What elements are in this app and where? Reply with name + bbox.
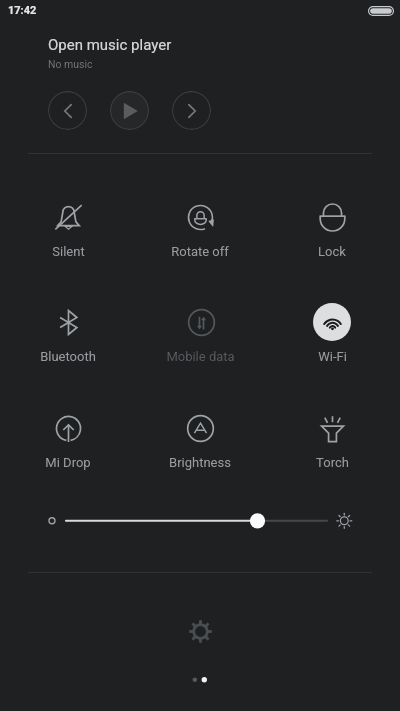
- button[interactable]: Brightness: [156, 409, 244, 481]
- staticText: Lock: [318, 244, 346, 259]
- button[interactable]: Silent: [24, 198, 112, 270]
- button[interactable]: Settings: [178, 609, 222, 653]
- staticText: Bluetooth: [40, 349, 96, 364]
- button[interactable]: Open music player: [0, 34, 400, 74]
- staticText: Rotate off: [171, 244, 229, 259]
- button[interactable]: Mobile data: [156, 303, 244, 375]
- button[interactable]: Mi Drop: [24, 409, 112, 481]
- staticText: 17:42: [8, 4, 37, 17]
- staticText: Mobile data: [166, 349, 235, 364]
- other: Next track: [182, 101, 202, 121]
- other: Play: [120, 101, 140, 121]
- staticText: Open music player: [48, 36, 172, 54]
- staticText: Mi Drop: [45, 455, 91, 470]
- button[interactable]: Rotate off: [156, 198, 244, 270]
- button[interactable]: Next track: [172, 91, 211, 130]
- other: Previous track: [58, 101, 78, 121]
- button[interactable]: Bluetooth: [24, 303, 112, 375]
- staticText: Wi-Fi: [318, 349, 347, 364]
- button[interactable]: Play: [110, 91, 149, 130]
- button[interactable]: Previous track: [48, 91, 87, 130]
- staticText: Silent: [52, 244, 85, 259]
- staticText: Brightness: [169, 455, 231, 470]
- button[interactable]: [0, 500, 400, 540]
- staticText: Torch: [316, 455, 349, 470]
- button[interactable]: Wi-Fi: [288, 303, 376, 375]
- button[interactable]: Lock: [288, 198, 376, 270]
- button[interactable]: Torch: [288, 409, 376, 481]
- staticText: No music: [48, 58, 93, 70]
